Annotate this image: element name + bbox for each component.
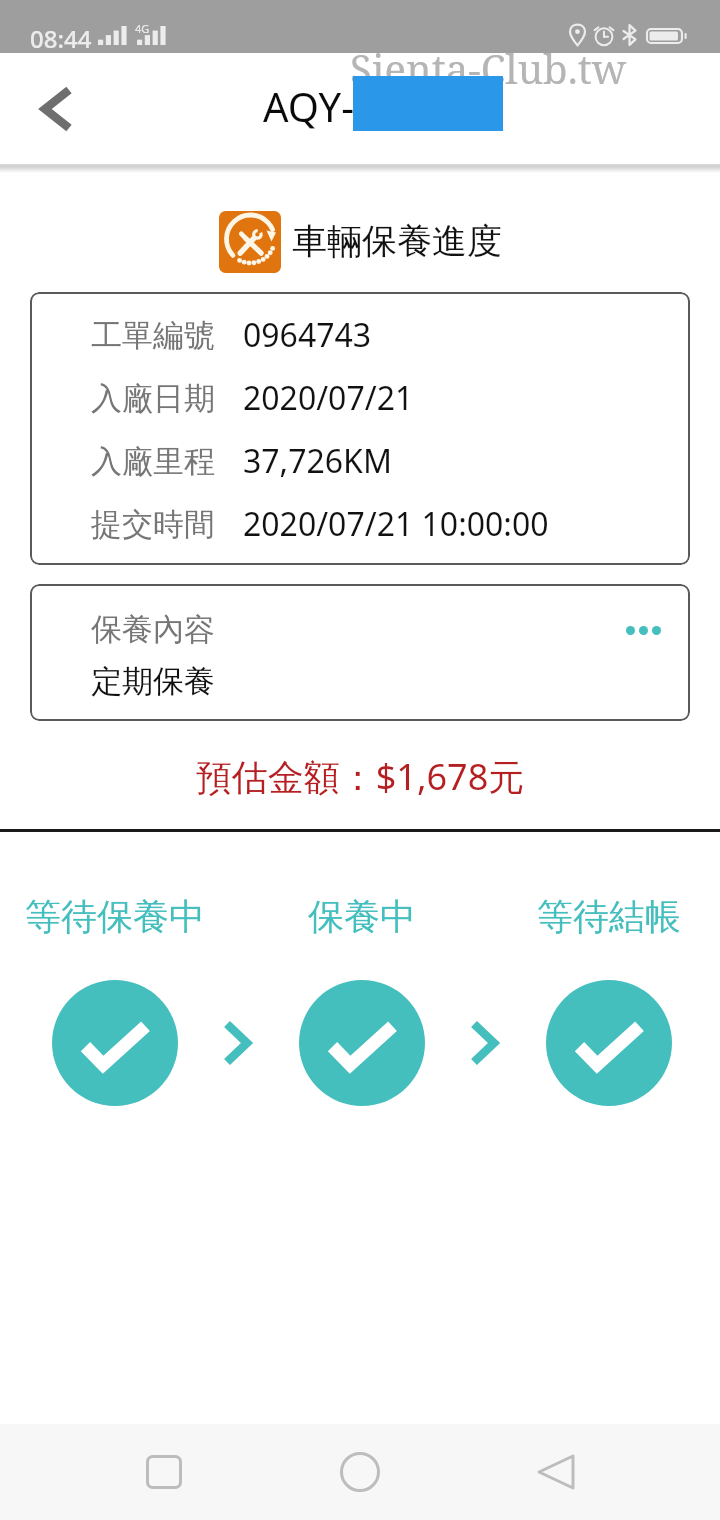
staticText: 入廠里程: [91, 442, 215, 481]
button[interactable]: 等待保養中: [0, 894, 235, 1111]
staticText: 預估金額：$1,678元: [0, 752, 720, 801]
staticText: 等待結帳: [489, 894, 720, 939]
button[interactable]: Recent apps: [109, 1424, 219, 1520]
staticText: AQY-: [263, 79, 355, 133]
button[interactable]: 等待結帳: [489, 894, 720, 1111]
staticText: 車輛保養進度: [292, 219, 502, 263]
staticText: Sienta-Club.tw: [350, 41, 627, 95]
staticText: 保養中: [242, 894, 482, 939]
staticText: 08:44: [30, 22, 92, 55]
staticText: 提交時間: [91, 505, 215, 544]
staticText: 等待保養中: [0, 894, 235, 939]
button[interactable]: Back: [501, 1424, 611, 1520]
staticText: 工單編號: [91, 316, 215, 355]
staticText: 2020/07/21: [243, 376, 414, 420]
staticText: 37,726KM: [243, 439, 392, 483]
staticText: 定期保養: [91, 662, 215, 701]
button[interactable]: 保養中: [242, 894, 482, 1111]
button[interactable]: Home: [305, 1424, 415, 1520]
staticText: 0964743: [243, 313, 372, 357]
staticText: 保養內容: [91, 610, 215, 649]
staticText: 4G: [135, 21, 150, 36]
staticText: 入廠日期: [91, 379, 215, 418]
button[interactable]: 保養內容: [30, 584, 690, 721]
staticText: 2020/07/21 10:00:00: [243, 502, 549, 546]
button[interactable]: Back: [9, 53, 105, 165]
